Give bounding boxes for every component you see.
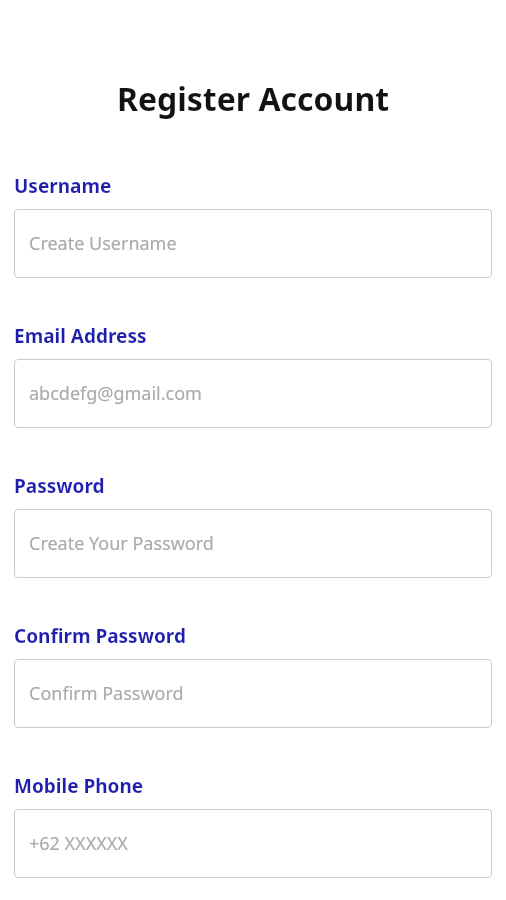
staticText: Register Account bbox=[0, 77, 506, 121]
staticText: Create Your Password bbox=[29, 531, 214, 556]
staticText: Mobile Phone bbox=[14, 773, 144, 799]
staticText: Confirm Password bbox=[14, 623, 186, 649]
button[interactable]: Email Address bbox=[14, 359, 492, 428]
button[interactable]: Confirm Password bbox=[14, 659, 492, 728]
staticText: Create Username bbox=[29, 231, 177, 256]
staticText: Email Address bbox=[14, 323, 147, 349]
staticText: Password bbox=[14, 473, 105, 499]
button[interactable]: Password bbox=[14, 509, 492, 578]
button[interactable]: Username bbox=[14, 209, 492, 278]
staticText: Username bbox=[14, 173, 112, 199]
button[interactable]: Mobile Phone bbox=[14, 809, 492, 878]
staticText: abcdefg@gmail.com bbox=[29, 381, 202, 406]
staticText: Confirm Password bbox=[29, 681, 184, 706]
staticText: +62 XXXXXX bbox=[29, 831, 128, 856]
